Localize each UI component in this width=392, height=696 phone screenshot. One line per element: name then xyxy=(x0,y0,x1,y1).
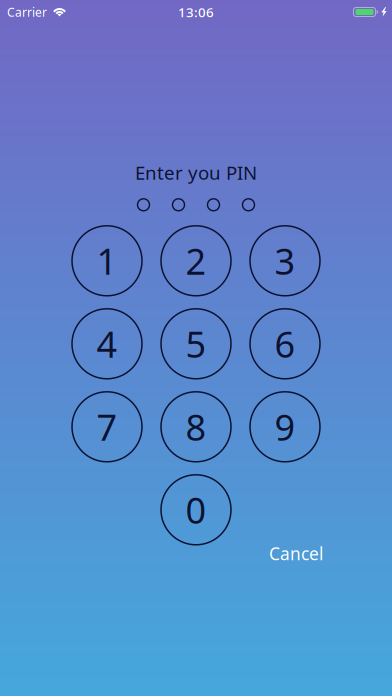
button[interactable]: 9 xyxy=(250,392,320,462)
staticText: 7 xyxy=(96,403,117,451)
button[interactable]: 1 xyxy=(72,226,142,296)
staticText: 13:06 xyxy=(178,3,214,21)
button[interactable]: Cancel xyxy=(261,535,331,572)
staticText: 1 xyxy=(96,237,117,285)
button[interactable]: 5 xyxy=(161,309,231,379)
staticText: 2 xyxy=(185,237,206,285)
staticText: 0 xyxy=(185,486,206,534)
staticText: Cancel xyxy=(269,542,323,565)
staticText: 6 xyxy=(274,320,295,368)
staticText: 4 xyxy=(96,320,117,368)
staticText: 3 xyxy=(274,237,295,285)
staticText: 9 xyxy=(274,403,295,451)
staticText: 8 xyxy=(185,403,206,451)
staticText: Carrier xyxy=(7,4,47,20)
staticText: Enter you PIN xyxy=(135,160,257,185)
button[interactable]: 6 xyxy=(250,309,320,379)
button[interactable]: 4 xyxy=(72,309,142,379)
button[interactable]: 0 xyxy=(161,475,231,545)
button[interactable]: 3 xyxy=(250,226,320,296)
button[interactable]: 7 xyxy=(72,392,142,462)
button[interactable]: 8 xyxy=(161,392,231,462)
button[interactable]: 2 xyxy=(161,226,231,296)
staticText: 5 xyxy=(185,320,206,368)
